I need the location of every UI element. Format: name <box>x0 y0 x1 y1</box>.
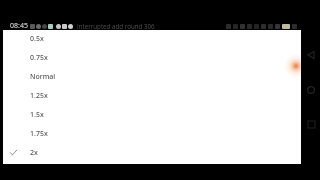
button[interactable]: Home <box>301 80 320 100</box>
button[interactable]: Back <box>301 45 320 65</box>
button[interactable]: 0.75x <box>3 48 301 67</box>
button[interactable]: Recent apps <box>301 114 320 134</box>
staticText: Normal <box>30 72 56 82</box>
staticText: 2x <box>30 148 38 158</box>
button[interactable]: Normal <box>3 67 301 86</box>
staticText: 0.75x <box>30 53 48 63</box>
staticText: 08:45 <box>10 21 28 31</box>
button[interactable]: 2x <box>3 143 301 162</box>
staticText: interrupted add round 306 <box>77 22 155 30</box>
button[interactable]: 1.75x <box>3 124 301 143</box>
button[interactable]: 0.5x <box>3 29 301 48</box>
staticText: 1.75x <box>30 129 48 139</box>
button[interactable]: 1.5x <box>3 105 301 124</box>
staticText: 1.5x <box>30 110 44 120</box>
button[interactable]: 1.25x <box>3 86 301 105</box>
staticText: 0.5x <box>30 34 44 44</box>
staticText: 1.25x <box>30 91 48 101</box>
